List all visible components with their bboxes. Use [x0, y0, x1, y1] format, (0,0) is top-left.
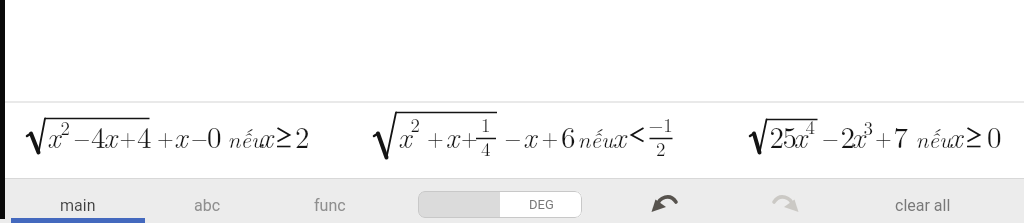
button[interactable] [768, 190, 804, 216]
staticText: abc [194, 196, 221, 215]
button[interactable]: abc [140, 178, 274, 223]
button[interactable] [646, 190, 682, 216]
staticText: func [314, 196, 346, 215]
button[interactable]: DEG [418, 191, 582, 218]
button[interactable]: func [263, 178, 397, 223]
staticText: main [60, 196, 96, 215]
button[interactable]: clear all [877, 178, 969, 223]
button[interactable]: main [11, 178, 145, 223]
staticText: DEG [529, 197, 554, 212]
staticText: clear all [895, 196, 951, 215]
